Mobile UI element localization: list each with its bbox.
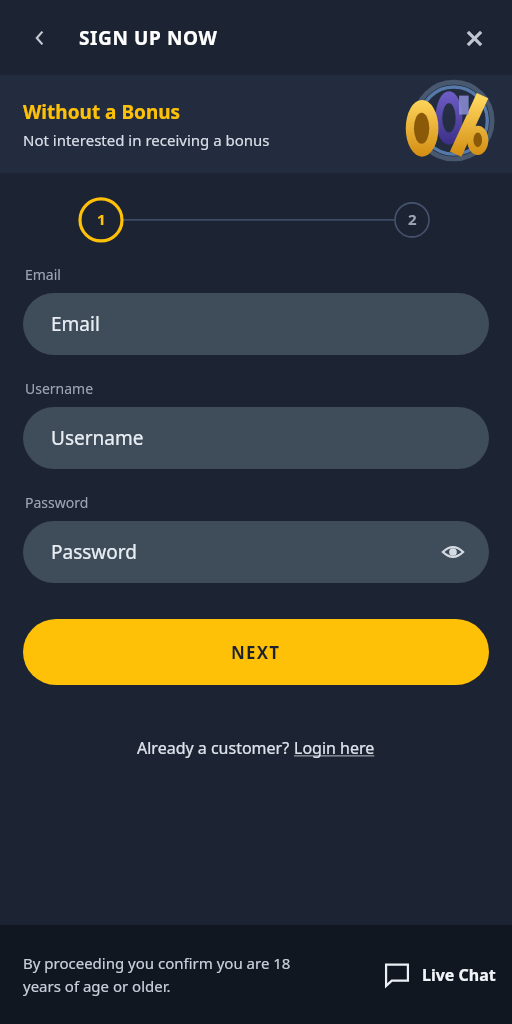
staticText: Email — [51, 311, 100, 337]
staticText: Login here — [294, 737, 375, 759]
staticText: 1 — [97, 209, 106, 229]
button[interactable]: Login here — [294, 737, 375, 759]
button[interactable]: 1 — [79, 197, 123, 241]
staticText: Password — [25, 493, 89, 512]
button[interactable]: Back — [20, 18, 60, 58]
button[interactable]: NEXT — [23, 619, 489, 685]
staticText: Already a customer? — [137, 737, 294, 759]
button[interactable]: Email — [23, 293, 489, 355]
button[interactable]: Username — [23, 407, 489, 469]
button[interactable]: Close — [454, 18, 494, 58]
button[interactable]: Live Chat — [384, 962, 496, 988]
staticText: 2 — [408, 209, 417, 229]
staticText: By proceeding you confirm you are 18 yea… — [23, 953, 343, 996]
button[interactable]: Show password — [433, 532, 473, 572]
staticText: Live Chat — [422, 964, 496, 986]
staticText: Without a Bonus — [23, 99, 181, 125]
button[interactable]: 2 — [390, 197, 434, 241]
staticText: NEXT — [231, 641, 281, 664]
other: Live Chat — [384, 962, 410, 988]
staticText: Not interested in receiving a bonus — [23, 130, 270, 150]
staticText: Username — [51, 425, 144, 451]
staticText: Username — [25, 379, 94, 398]
staticText: Password — [51, 539, 137, 565]
button[interactable]: Password — [23, 521, 489, 583]
button[interactable]: Without a Bonus — [0, 75, 512, 173]
staticText: SIGN UP NOW — [79, 25, 218, 51]
staticText: Email — [25, 265, 61, 284]
